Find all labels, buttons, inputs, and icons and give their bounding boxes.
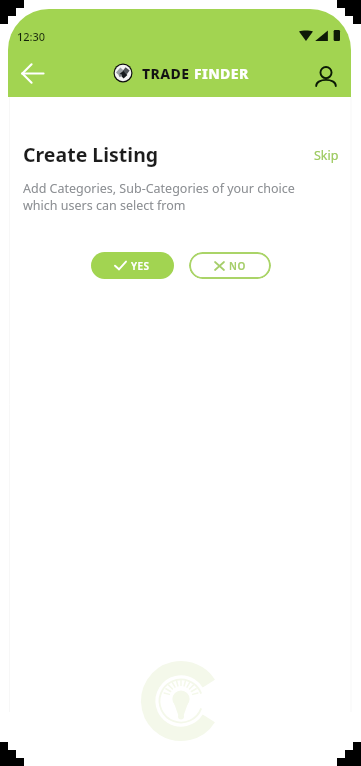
button[interactable]: YES [91,252,174,279]
button[interactable]: Back [12,53,52,93]
button[interactable]: NO [189,252,271,279]
staticText: FINDER [194,64,249,83]
staticText: YES [131,259,150,273]
staticText: NO [229,259,246,273]
staticText: Skip [314,147,339,164]
staticText: Create Listing [23,141,159,168]
staticText: 12:30 [17,29,46,44]
staticText: TRADE [142,64,190,83]
button[interactable]: Skip [314,147,339,164]
button[interactable]: Profile [308,58,344,94]
staticText: Add Categories, Sub-Categories of your c… [23,180,295,214]
